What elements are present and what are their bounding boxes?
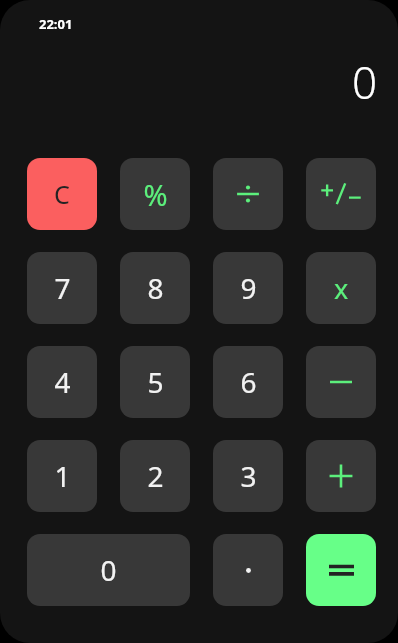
button[interactable]: 2 <box>120 440 190 512</box>
staticText: 0 <box>351 52 377 112</box>
button[interactable]: Divide <box>213 158 283 230</box>
button[interactable]: 1 <box>27 440 97 512</box>
button[interactable]: Decimal point <box>213 534 283 606</box>
staticText: 7 <box>54 269 71 307</box>
staticText: 2 <box>147 457 164 495</box>
staticText: 8 <box>147 269 164 307</box>
staticText: 0 <box>100 551 117 589</box>
staticText: 6 <box>240 363 257 401</box>
staticText: 5 <box>147 363 164 401</box>
button[interactable]: Plus minus <box>306 158 376 230</box>
staticText: % <box>143 175 168 214</box>
button[interactable]: 8 <box>120 252 190 324</box>
staticText: x <box>334 270 349 307</box>
button[interactable]: 4 <box>27 346 97 418</box>
button[interactable]: Add <box>306 440 376 512</box>
staticText: 3 <box>240 457 257 495</box>
button[interactable]: 0 <box>27 534 190 606</box>
staticText: 22:01 <box>39 15 73 33</box>
button[interactable]: 5 <box>120 346 190 418</box>
button[interactable]: Equals <box>306 534 376 606</box>
button[interactable]: 3 <box>213 440 283 512</box>
staticText: 1 <box>54 457 71 495</box>
button[interactable]: 9 <box>213 252 283 324</box>
button[interactable]: Subtract <box>306 346 376 418</box>
button[interactable]: 7 <box>27 252 97 324</box>
staticText: 9 <box>240 269 257 307</box>
button[interactable]: Multiply <box>306 252 376 324</box>
button[interactable]: C <box>27 158 97 230</box>
button[interactable]: % <box>120 158 190 230</box>
staticText: C <box>54 177 70 211</box>
button[interactable]: 6 <box>213 346 283 418</box>
staticText: 4 <box>54 363 71 401</box>
